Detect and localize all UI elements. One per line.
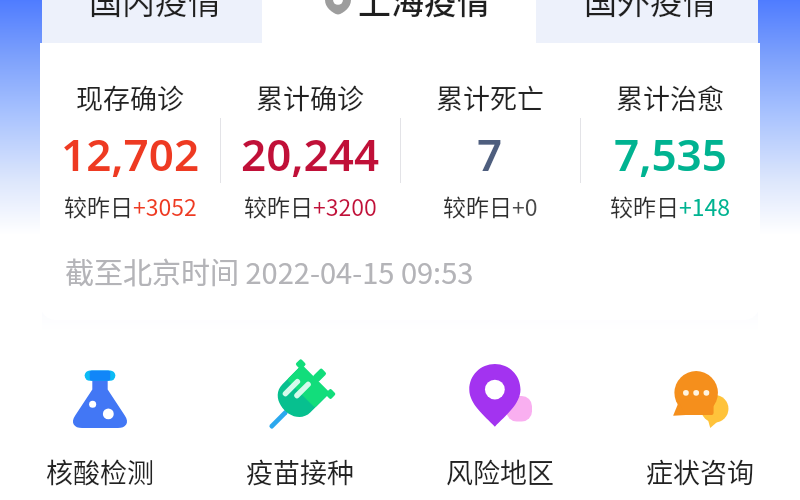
- staticText: 国内疫情: [89, 0, 221, 19]
- staticText: 疫苗接种: [246, 452, 354, 491]
- button[interactable]: 症状咨询: [600, 364, 800, 491]
- staticText: 累计治愈: [616, 78, 724, 117]
- staticText: 现存确诊: [76, 78, 184, 117]
- staticText: 上海疫情: [358, 0, 490, 19]
- button[interactable]: 疫苗接种: [200, 364, 400, 491]
- staticText: 风险地区: [446, 452, 554, 491]
- staticText: 较昨日+3200: [244, 189, 377, 222]
- button[interactable]: 核酸检测: [0, 364, 200, 491]
- staticText: 12,702: [61, 124, 200, 184]
- staticText: 截至北京时间 2022-04-15 09:53: [65, 250, 474, 292]
- button[interactable]: 国外疫情: [536, 0, 758, 43]
- staticText: 症状咨询: [646, 452, 754, 491]
- staticText: 7: [477, 124, 503, 184]
- staticText: 累计死亡: [436, 78, 544, 117]
- button[interactable]: 上海疫情: [262, 0, 536, 43]
- staticText: 7,535: [614, 124, 727, 184]
- staticText: 20,244: [241, 124, 380, 184]
- staticText: 较昨日+148: [610, 189, 731, 222]
- button[interactable]: 国内疫情: [42, 0, 262, 43]
- staticText: 累计确诊: [256, 78, 364, 117]
- staticText: 较昨日+0: [443, 189, 538, 222]
- staticText: 核酸检测: [46, 452, 154, 491]
- button[interactable]: 风险地区: [400, 364, 600, 491]
- staticText: 较昨日+3052: [64, 189, 197, 222]
- staticText: 国外疫情: [584, 0, 716, 19]
